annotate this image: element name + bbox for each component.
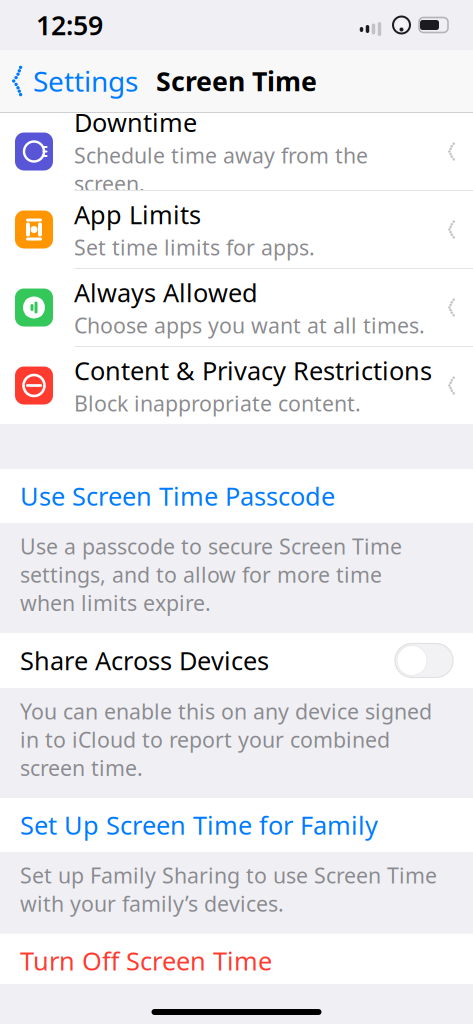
staticText: Choose apps you want at all times. xyxy=(74,311,425,339)
staticText: Content & Privacy Restrictions xyxy=(74,353,432,387)
staticText: App Limits xyxy=(74,197,201,231)
staticText: Schedule time away from the screen. xyxy=(74,141,368,198)
staticText: Set Up Screen Time for Family xyxy=(20,808,378,842)
staticText: Screen Time xyxy=(156,63,317,99)
button[interactable]: Set Up Screen Time for Family xyxy=(0,798,473,852)
button[interactable]: Always Allowed xyxy=(0,269,473,346)
staticText: You can enable this on any device signed… xyxy=(20,697,432,782)
staticText: Always Allowed xyxy=(74,275,258,309)
staticText: Use a passcode to secure Screen Time set… xyxy=(20,532,402,617)
staticText: Use Screen Time Passcode xyxy=(20,479,335,513)
button[interactable]: Share Across Devices xyxy=(0,633,473,688)
button[interactable]: Content & Privacy Restrictions xyxy=(0,347,473,424)
staticText: Set up Family Sharing to use Screen Time… xyxy=(20,861,437,918)
button[interactable]: Downtime xyxy=(0,113,473,190)
button[interactable]: Settings xyxy=(0,53,150,109)
button[interactable]: App Limits xyxy=(0,191,473,268)
staticText: Set time limits for apps. xyxy=(74,233,315,261)
staticText: Share Across Devices xyxy=(20,644,269,677)
staticText: 12:59 xyxy=(36,7,103,43)
staticText: Turn Off Screen Time xyxy=(20,944,272,977)
button[interactable]: Use Screen Time Passcode xyxy=(0,469,473,523)
staticText: Downtime xyxy=(74,105,197,139)
staticText: Block inappropriate content. xyxy=(74,389,361,417)
staticText: Settings xyxy=(33,62,138,100)
button[interactable]: Turn Off Screen Time xyxy=(0,934,473,988)
